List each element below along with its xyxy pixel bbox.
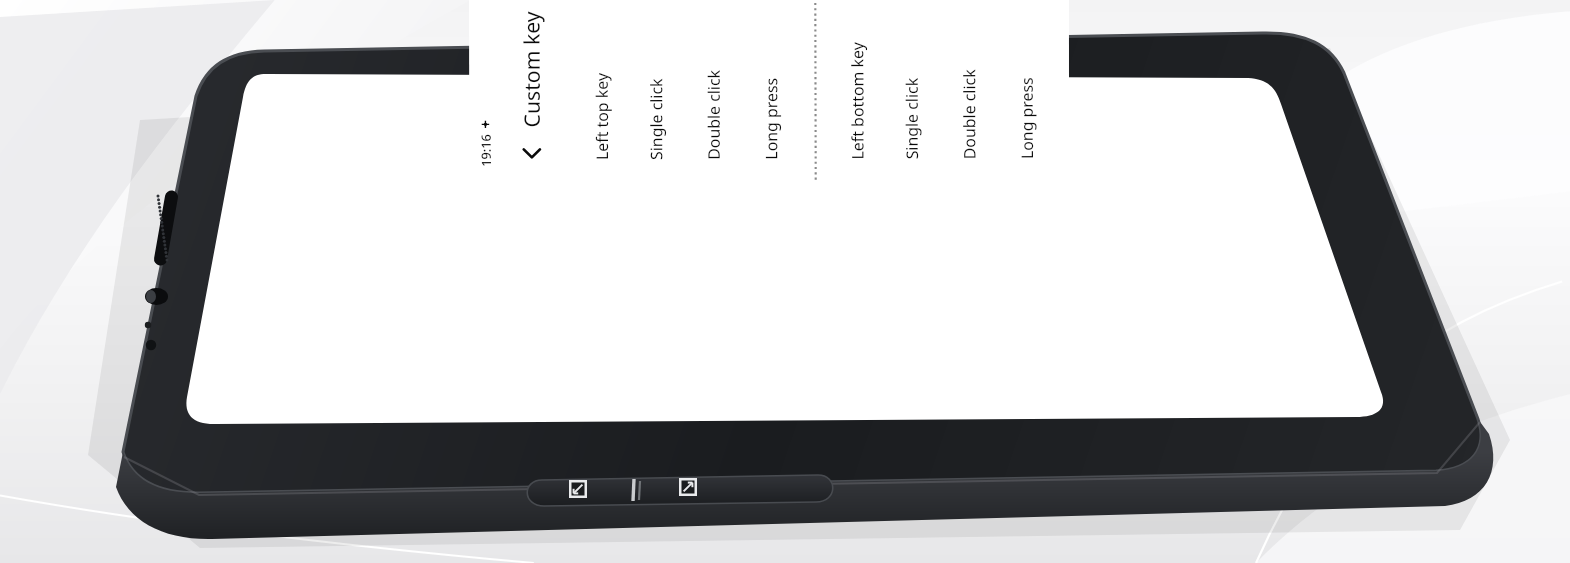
staticText: Left top key [591,72,612,160]
staticText: Custom key [517,11,546,127]
staticText: Long press [1016,76,1037,159]
staticText: 19:16 [477,134,494,167]
button[interactable]: Long press [741,0,800,180]
staticText: Double click [703,70,724,160]
staticText: Left bottom key [846,42,868,159]
button[interactable]: Long press [997,0,1055,179]
button[interactable]: Single click [882,0,940,180]
staticText: Single click [901,78,922,159]
staticText: Single click [645,78,667,160]
staticText: Double click [958,69,980,159]
staticText: Long press [760,77,782,160]
button[interactable]: Single click [626,0,685,180]
button[interactable]: Double click [939,0,998,179]
button[interactable]: Back [505,127,558,180]
button[interactable]: Double click [684,0,742,180]
